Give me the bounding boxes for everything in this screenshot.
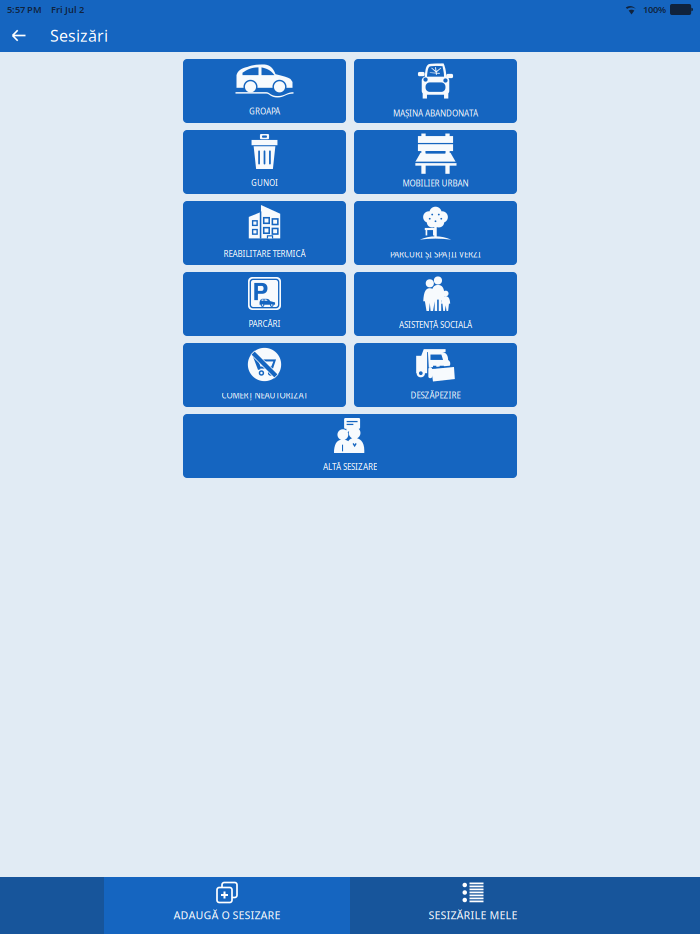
button[interactable]: PARCURI ȘI SPAȚII VERZI	[354, 201, 517, 265]
staticText: Fri Jul 2	[51, 3, 84, 16]
staticText: SESIZĂRILE MELE	[428, 908, 517, 922]
button[interactable]: ALTĂ SESIZARE	[183, 414, 517, 478]
staticText: Sesizări	[50, 25, 108, 46]
button[interactable]: Back	[0, 19, 38, 52]
button[interactable]: REABILITARE TERMICĂ	[183, 201, 346, 265]
staticText: ALTĂ SESIZARE	[323, 462, 377, 472]
button[interactable]: ADAUGĂ O SESIZARE	[104, 877, 350, 934]
staticText: GROAPĂ	[249, 106, 280, 117]
staticText: DESZĂPEZIRE	[410, 390, 460, 401]
staticText: ADAUGĂ O SESIZARE	[173, 908, 280, 922]
button[interactable]: PARCĂRI	[183, 272, 346, 336]
staticText: 5:57 PM	[7, 3, 42, 16]
staticText: MAȘINĂ ABANDONATĂ	[393, 108, 478, 119]
button[interactable]: GUNOI	[183, 130, 346, 194]
button[interactable]: COMERȚ NEAUTORIZAT	[183, 343, 346, 407]
staticText: PARCĂRI	[248, 319, 280, 329]
button[interactable]: GROAPĂ	[183, 59, 346, 123]
staticText: 100%	[643, 3, 666, 16]
staticText: ASISTENȚĂ SOCIALĂ	[399, 320, 472, 330]
staticText: REABILITARE TERMICĂ	[223, 249, 305, 259]
button[interactable]: ASISTENȚĂ SOCIALĂ	[354, 272, 517, 336]
staticText: GUNOI	[251, 178, 278, 188]
button[interactable]: SESIZĂRILE MELE	[350, 877, 596, 934]
button[interactable]: MAȘINĂ ABANDONATĂ	[354, 59, 517, 123]
staticText: MOBILIER URBAN	[402, 178, 468, 189]
button[interactable]: MOBILIER URBAN	[354, 130, 517, 194]
staticText: COMERȚ NEAUTORIZAT	[221, 390, 307, 401]
button[interactable]: DESZĂPEZIRE	[354, 343, 517, 407]
staticText: PARCURI ȘI SPAȚII VERZI	[390, 249, 481, 260]
